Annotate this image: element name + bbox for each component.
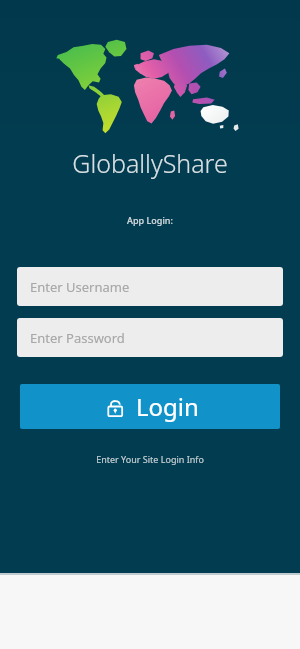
button[interactable]: Enter Username xyxy=(17,267,283,306)
button[interactable]: Login xyxy=(20,384,280,429)
staticText: Enter Your Site Login Info xyxy=(96,453,204,465)
staticText: Login xyxy=(136,390,199,423)
staticText: Enter Username xyxy=(30,278,130,296)
staticText: App Login: xyxy=(127,214,173,226)
other: GloballyShare world map logo xyxy=(52,36,248,144)
staticText: GloballyShare xyxy=(72,146,228,180)
staticText: Enter Password xyxy=(30,329,125,347)
button[interactable]: Enter Password xyxy=(17,318,283,357)
